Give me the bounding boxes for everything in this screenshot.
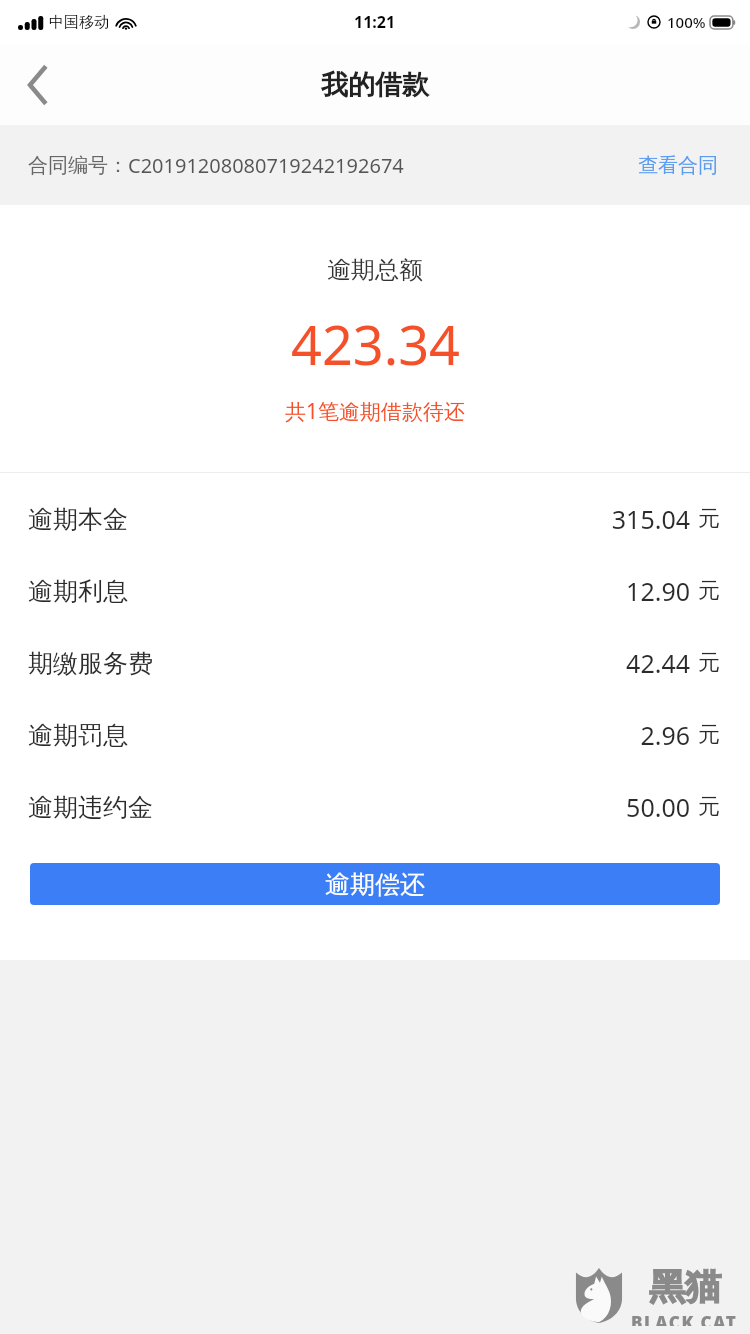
staticText: 黑猫 [649, 1264, 721, 1309]
staticText: 元 [698, 721, 720, 749]
staticText: C20191208080719242192674 [128, 152, 404, 179]
staticText: 元 [698, 649, 720, 677]
staticText: 期缴服务费 [28, 648, 153, 679]
staticText: 元 [698, 505, 720, 533]
staticText: 逾期本金 [28, 504, 128, 535]
staticText: 12.90 [626, 574, 690, 608]
staticText: 元 [698, 577, 720, 605]
staticText: 我的借款 [321, 68, 429, 102]
staticText: BLACK CAT [631, 1311, 738, 1326]
staticText: 查看合同 [638, 153, 718, 178]
staticText: 11:21 [354, 11, 396, 33]
button[interactable]: 逾期偿还 [30, 863, 720, 905]
staticText: 元 [698, 793, 720, 821]
staticText: 2.96 [640, 718, 690, 752]
button[interactable]: Back [0, 44, 76, 125]
staticText: 逾期总额 [327, 255, 423, 285]
button[interactable]: 查看合同 [634, 145, 722, 186]
staticText: 315.04 [611, 502, 690, 536]
staticText: 逾期违约金 [28, 792, 153, 823]
staticText: 423.34 [291, 307, 460, 381]
staticText: 中国移动 [49, 13, 109, 32]
staticText: 逾期罚息 [28, 720, 128, 751]
staticText: 逾期利息 [28, 576, 128, 607]
staticText: 100% [667, 12, 706, 32]
staticText: 42.44 [626, 646, 690, 680]
staticText: 合同编号： [28, 153, 128, 178]
staticText: 逾期偿还 [325, 869, 425, 900]
staticText: 共1笔逾期借款待还 [285, 397, 466, 426]
staticText: 50.00 [626, 790, 690, 824]
